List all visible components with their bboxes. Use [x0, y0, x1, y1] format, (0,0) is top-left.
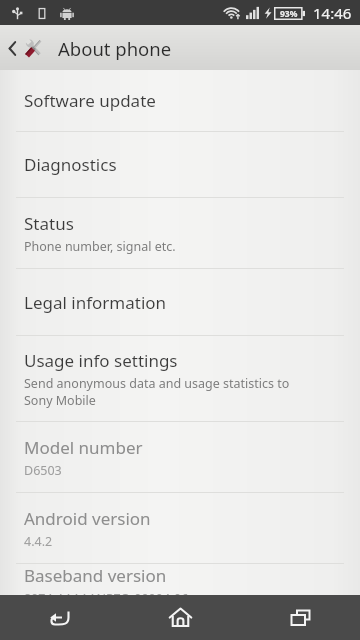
staticText: Legal information [24, 291, 167, 314]
staticText: Send anonymous data and usage statistics… [24, 375, 290, 408]
staticText: Phone number, signal etc. [24, 238, 176, 255]
staticText: About phone [58, 36, 172, 61]
button[interactable]: Model number [0, 422, 360, 492]
staticText: 14:46 [313, 3, 352, 23]
button[interactable]: Usage info settings [0, 336, 360, 421]
button[interactable]: Navigate up [0, 28, 50, 68]
staticText: Status [24, 212, 74, 235]
staticText: 4.4.2 [24, 533, 53, 550]
button[interactable]: Baseband version [0, 564, 360, 595]
button[interactable]: Recent apps [240, 595, 360, 640]
button[interactable]: Legal information [0, 269, 360, 335]
button[interactable]: Home [120, 595, 240, 640]
staticText: Usage info settings [24, 349, 178, 372]
staticText: 93% [280, 8, 298, 20]
staticText: 8974-AAAAANPZQ-00004-06 [24, 590, 189, 595]
staticText: Model number [24, 436, 143, 459]
staticText: Android version [24, 507, 151, 530]
staticText: Software update [24, 89, 156, 112]
staticText: Diagnostics [24, 153, 117, 176]
staticText: D6503 [24, 462, 62, 479]
button[interactable]: Diagnostics [0, 132, 360, 197]
staticText: Baseband version [24, 564, 167, 587]
button[interactable]: Android version [0, 493, 360, 563]
button[interactable]: Status [0, 198, 360, 268]
button[interactable]: Back [0, 595, 120, 640]
button[interactable]: Software update [0, 70, 360, 131]
